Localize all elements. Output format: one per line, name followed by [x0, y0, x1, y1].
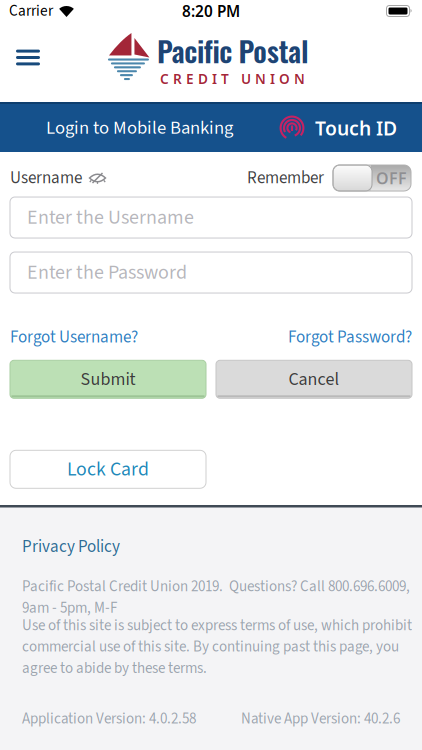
- button[interactable]: Forgot Password?: [288, 325, 412, 349]
- staticText: Privacy Policy: [22, 534, 120, 559]
- button[interactable]: Touch ID: [279, 114, 422, 141]
- staticText: Login to Mobile Banking: [46, 115, 233, 141]
- button[interactable]: Remember, off: [333, 165, 411, 191]
- staticText: Application Version: 4.0.2.58: [22, 708, 196, 730]
- button[interactable]: Submit: [10, 360, 206, 398]
- button[interactable]: Cancel: [216, 360, 412, 398]
- button[interactable]: Privacy Policy: [0, 507, 120, 559]
- button[interactable]: Lock Card: [10, 450, 206, 488]
- staticText: Enter the Password: [27, 258, 187, 287]
- staticText: Pacific Postal Credit Union 2019. Questi…: [22, 576, 410, 619]
- staticText: Remember: [247, 166, 324, 190]
- button[interactable]: Forgot Username?: [10, 325, 138, 349]
- staticText: Carrier: [9, 0, 53, 22]
- button[interactable]: Menu: [0, 50, 40, 74]
- staticText: C R E D I T U N I O N: [160, 69, 305, 88]
- staticText: Touch ID: [315, 115, 397, 141]
- staticText: OFF: [376, 167, 407, 189]
- staticText: Cancel: [288, 366, 339, 392]
- staticText: Pacific Postal: [157, 29, 309, 71]
- staticText: Submit: [80, 366, 135, 392]
- staticText: Forgot Password?: [288, 325, 412, 349]
- staticText: Native App Version: 40.2.6: [241, 708, 400, 730]
- staticText: Forgot Username?: [10, 325, 138, 349]
- staticText: 8:20 PM: [182, 1, 240, 21]
- staticText: Lock Card: [67, 455, 149, 483]
- staticText: Username: [10, 166, 82, 190]
- staticText: Enter the Username: [27, 203, 194, 232]
- staticText: Use of this site is subject to express t…: [22, 615, 412, 679]
